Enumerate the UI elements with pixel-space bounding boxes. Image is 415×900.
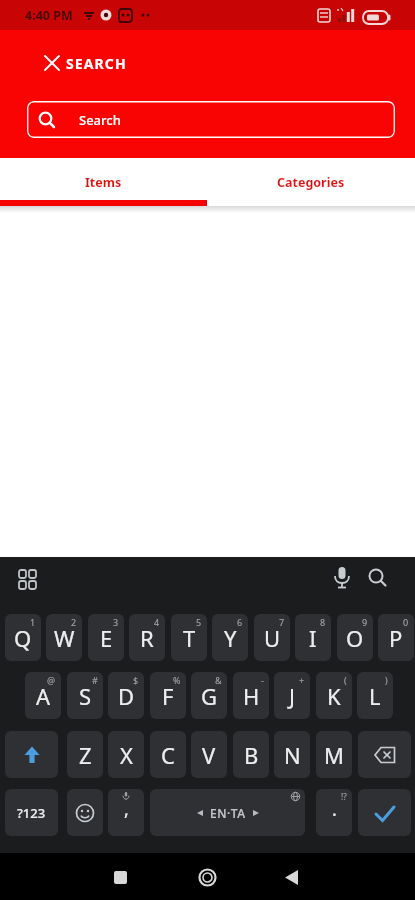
staticText: ?123 [17,804,46,822]
staticText: M [324,740,344,770]
button[interactable]: G [191,672,227,719]
staticText: G [201,681,218,711]
button[interactable]: R [129,614,165,661]
button[interactable]: Z [67,731,103,778]
staticText: 4 [154,616,160,628]
staticText: 5 [196,616,202,628]
staticText: N [284,740,301,770]
button[interactable]: EN·TA [150,789,305,836]
button[interactable]: Categories [207,158,415,206]
button[interactable]: S [67,672,103,719]
staticText: E [100,623,113,653]
staticText: . [332,797,337,822]
staticText: - [261,674,264,686]
staticText: & [215,674,222,686]
staticText: Q [14,623,32,653]
staticText: 6 [237,616,243,628]
staticText: A [36,681,51,711]
staticText: P [389,623,403,653]
button[interactable]: M [316,731,352,778]
staticText: I [309,623,317,653]
button[interactable]: D [108,672,144,719]
button[interactable] [194,864,220,890]
button[interactable]: . [316,789,352,836]
button[interactable] [5,731,58,778]
staticText: 8 [320,616,326,628]
button[interactable] [358,789,411,836]
staticText: U [264,623,281,653]
button[interactable]: I [295,614,331,661]
button[interactable]: H [233,672,269,719]
button[interactable]: W [46,614,82,661]
staticText: X [120,740,133,770]
button[interactable] [358,731,411,778]
staticText: EN·TA [210,805,246,821]
staticText: 7 [279,616,285,628]
staticText: Z [79,740,92,770]
staticText: K [327,681,341,711]
button[interactable]: V [191,731,227,778]
staticText: S [79,681,92,711]
staticText: @ [47,674,56,686]
button[interactable]: Y [212,614,248,661]
button[interactable] [330,565,354,591]
button[interactable]: U [254,614,290,661]
button[interactable]: A [25,672,61,719]
staticText: D [118,681,135,711]
staticText: V [202,740,216,770]
button[interactable]: X [108,731,144,778]
staticText: 4:40 PM [25,7,73,24]
button[interactable]: Search [27,101,395,138]
button[interactable]: E [88,614,124,661]
staticText: Y [224,623,237,653]
staticText: J [289,681,296,711]
staticText: Search [79,111,121,129]
button[interactable]: B [233,731,269,778]
staticText: 2 [71,616,77,628]
button[interactable]: T [171,614,207,661]
button[interactable] [67,789,103,836]
button[interactable] [107,864,133,890]
staticText: Items [85,174,122,191]
staticText: O [346,623,364,653]
button[interactable]: Items [0,158,207,206]
staticText: Categories [277,174,345,191]
button[interactable]: ?123 [5,789,58,836]
staticText: 0 [403,616,409,628]
staticText: 3 [113,616,119,628]
staticText: 1 [30,616,36,628]
staticText: $ [133,674,139,686]
staticText: R [140,623,154,653]
staticText: , [124,797,129,822]
button[interactable] [365,565,391,591]
staticText: SEARCH [66,54,127,73]
staticText: # [92,674,98,686]
staticText: T [183,623,196,653]
button[interactable] [278,864,304,890]
button[interactable]: F [150,672,186,719]
button[interactable] [38,49,66,77]
staticText: 9 [362,616,368,628]
button[interactable]: N [274,731,310,778]
button[interactable]: K [316,672,352,719]
staticText: H [243,681,260,711]
button[interactable]: O [337,614,373,661]
staticText: ) [385,674,388,686]
staticText: C [161,740,175,770]
staticText: ( [344,674,347,686]
button[interactable] [14,566,46,592]
button[interactable]: Q [5,614,41,661]
staticText: F [162,681,174,711]
staticText: B [244,740,259,770]
button[interactable]: J [274,672,310,719]
button[interactable]: C [150,731,186,778]
staticText: + [299,674,305,686]
button[interactable]: L [357,672,393,719]
button[interactable]: P [378,614,414,661]
staticText: % [173,674,181,686]
staticText: W [54,623,75,653]
button[interactable]: , [108,789,144,836]
staticText: !? [341,791,347,802]
staticText: L [369,681,381,711]
